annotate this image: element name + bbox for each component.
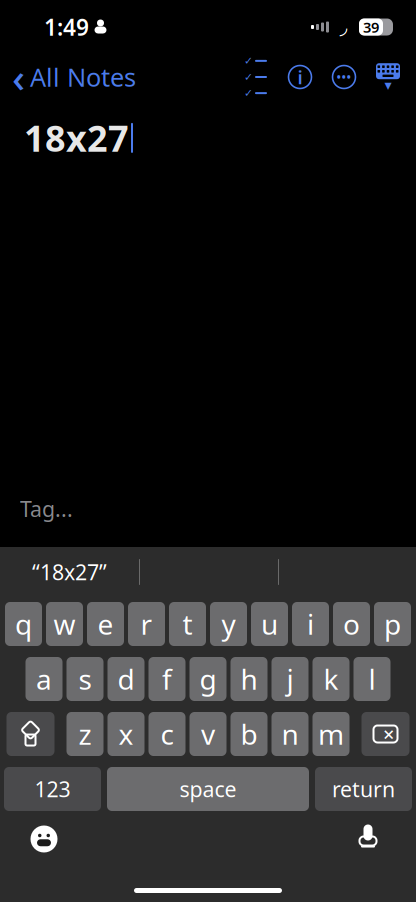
button[interactable]: s <box>66 657 103 701</box>
staticText: s <box>78 660 91 698</box>
staticText: × <box>383 721 394 747</box>
staticText: p <box>384 605 401 643</box>
button[interactable]: ‹ <box>0 55 136 99</box>
staticText: All Notes <box>30 60 136 94</box>
staticText: z <box>78 715 91 753</box>
staticText: ✓ <box>244 87 253 99</box>
staticText: x <box>118 715 133 753</box>
button[interactable]: c <box>148 712 185 756</box>
button[interactable]: t <box>169 602 206 646</box>
button[interactable]: Checklist <box>234 55 278 99</box>
staticText: return <box>332 775 395 803</box>
button[interactable]: h <box>230 657 267 701</box>
staticText: ••• <box>336 69 351 85</box>
button[interactable]: m <box>312 712 349 756</box>
staticText: a <box>36 660 52 698</box>
button[interactable]: More <box>322 55 366 99</box>
staticText: i <box>307 605 314 643</box>
staticText: r <box>140 605 152 643</box>
button[interactable]: e <box>87 602 124 646</box>
staticText: u <box>261 605 278 643</box>
staticText: j <box>286 660 293 698</box>
staticText: ✓ <box>244 55 253 67</box>
staticText: g <box>199 660 216 698</box>
staticText: h <box>240 660 257 698</box>
button[interactable]: r <box>128 602 165 646</box>
button[interactable]: return <box>315 767 412 811</box>
staticText: l <box>368 660 375 698</box>
staticText: w <box>53 605 75 643</box>
staticText: ◞ <box>339 16 347 38</box>
staticText: Tag... <box>20 495 73 523</box>
button[interactable]: x <box>107 712 144 756</box>
staticText: v <box>201 715 215 753</box>
button[interactable]: 123 <box>4 767 101 811</box>
button[interactable]: “18x27” <box>0 549 139 595</box>
staticText: space <box>179 775 236 803</box>
button[interactable]: k <box>312 657 349 701</box>
button[interactable]: space <box>107 767 309 811</box>
button[interactable]: f <box>148 657 185 701</box>
button[interactable]: p <box>374 602 411 646</box>
staticText: ▼ <box>384 80 391 91</box>
staticText: y <box>221 605 235 643</box>
button[interactable]: Dictate <box>346 818 390 860</box>
button[interactable]: a <box>25 657 62 701</box>
button[interactable]: v <box>189 712 226 756</box>
staticText: 1:49 <box>44 12 89 42</box>
staticText: ‹ <box>12 50 25 103</box>
button[interactable]: q <box>5 602 42 646</box>
staticText: n <box>281 715 298 753</box>
button[interactable]: b <box>230 712 267 756</box>
staticText: “18x27” <box>32 558 107 586</box>
staticText: 18x27 <box>24 114 129 162</box>
button[interactable]: n <box>271 712 308 756</box>
button[interactable]: w <box>46 602 83 646</box>
staticText: k <box>323 660 338 698</box>
staticText: 39 <box>363 17 379 37</box>
button[interactable]: l <box>353 657 390 701</box>
staticText: 123 <box>34 775 70 803</box>
staticText: o <box>343 605 360 643</box>
button[interactable]: Delete <box>361 712 409 756</box>
staticText: e <box>97 605 113 643</box>
button[interactable]: Emoji <box>20 818 68 860</box>
staticText: b <box>240 715 257 753</box>
button[interactable]: o <box>333 602 370 646</box>
button[interactable]: d <box>107 657 144 701</box>
button[interactable]: i <box>292 602 329 646</box>
button[interactable]: Info <box>278 55 322 99</box>
button[interactable]: Hide Keyboard <box>366 55 410 99</box>
staticText: t <box>182 605 192 643</box>
staticText: c <box>160 715 173 753</box>
button[interactable]: y <box>210 602 247 646</box>
button[interactable]: z <box>66 712 103 756</box>
button[interactable]: u <box>251 602 288 646</box>
staticText: d <box>117 660 134 698</box>
staticText: i <box>297 65 302 89</box>
staticText: f <box>162 660 172 698</box>
button[interactable]: j <box>271 657 308 701</box>
staticText: m <box>318 715 344 753</box>
staticText: q <box>15 605 32 643</box>
staticText: ✓ <box>244 71 253 83</box>
button[interactable]: g <box>189 657 226 701</box>
button[interactable]: Shift <box>6 712 54 756</box>
